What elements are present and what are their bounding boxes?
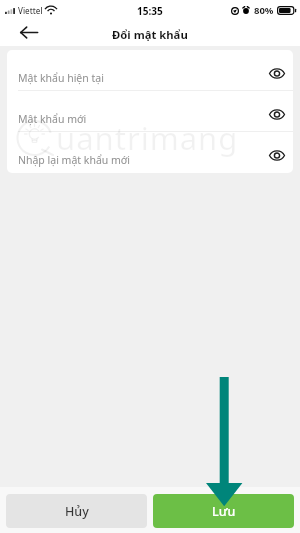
staticText: uantrimang bbox=[56, 117, 239, 159]
staticText: Đổi mật khẩu bbox=[112, 27, 188, 42]
button[interactable]: Lưu bbox=[153, 494, 294, 528]
button[interactable]: Back bbox=[16, 20, 42, 45]
staticText: 80% bbox=[254, 4, 274, 17]
button[interactable]: Mật khẩu mới bbox=[7, 91, 293, 132]
staticText: Viettel bbox=[18, 5, 43, 16]
staticText: Mật khẩu hiện tại bbox=[18, 71, 104, 85]
button[interactable]: Show password bbox=[264, 101, 290, 127]
staticText: 15:35 bbox=[137, 4, 163, 18]
staticText: Nhập lại mật khẩu mới bbox=[18, 153, 131, 167]
staticText: Hủy bbox=[65, 503, 89, 520]
button[interactable]: Nhập lại mật khẩu mới bbox=[7, 132, 293, 173]
button[interactable]: Mật khẩu hiện tại bbox=[7, 50, 293, 91]
button[interactable]: Show password bbox=[264, 60, 290, 86]
staticText: Lưu bbox=[212, 503, 236, 520]
button[interactable]: Hủy bbox=[6, 494, 147, 528]
staticText: Mật khẩu mới bbox=[18, 112, 87, 126]
button[interactable]: Show password bbox=[264, 142, 290, 168]
